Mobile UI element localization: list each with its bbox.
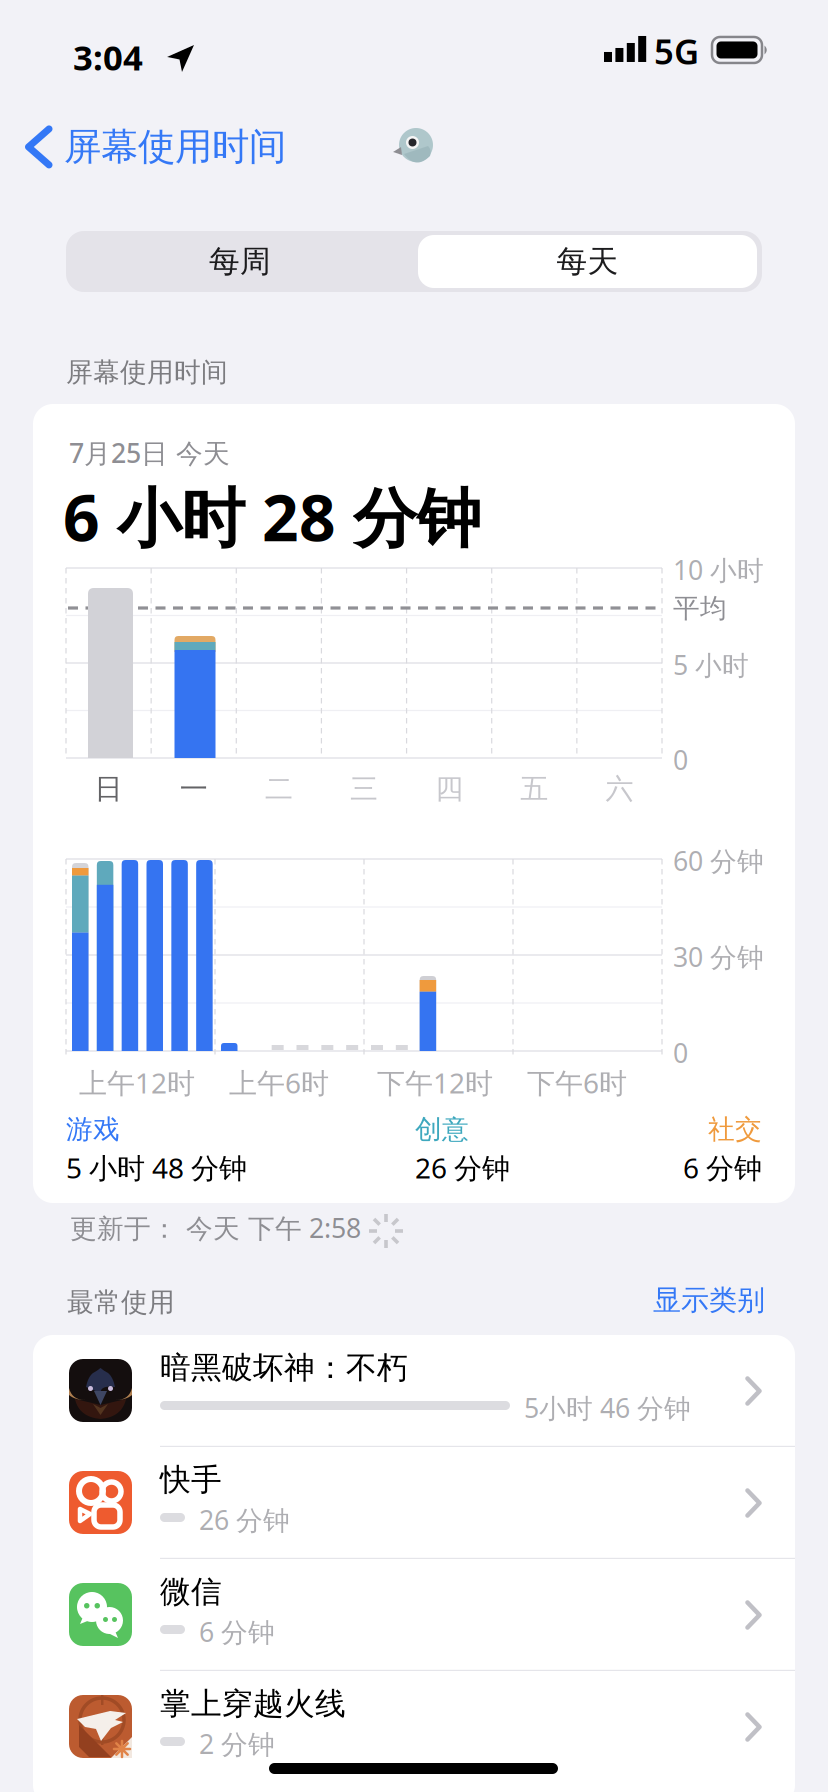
staticText: 社交	[708, 1113, 762, 1146]
staticText: 60 分钟	[673, 843, 764, 878]
staticText: 6 分钟	[199, 1614, 275, 1649]
staticText: 日	[95, 772, 123, 806]
staticText: 暗黑破坏神：不朽	[160, 1349, 408, 1387]
button[interactable]: 快手	[33, 1447, 795, 1559]
staticText: 二	[265, 772, 293, 806]
staticText: 显示类别	[653, 1283, 765, 1317]
button[interactable]: 掌上穿越火线	[33, 1671, 795, 1783]
staticText: 每天	[556, 243, 618, 280]
staticText: 平均	[673, 592, 727, 625]
staticText: 屏幕使用时间	[64, 124, 286, 170]
staticText: 快手	[160, 1461, 222, 1499]
staticText: 更新于： 今天 下午 2:58	[70, 1210, 361, 1245]
staticText: 5 小时 48 分钟	[66, 1149, 247, 1186]
staticText: 3:04	[73, 34, 143, 80]
button[interactable]: 微信	[33, 1559, 795, 1671]
staticText: 6 分钟	[683, 1149, 762, 1186]
staticText: 5G	[654, 28, 699, 74]
staticText: 下午6时	[527, 1064, 627, 1101]
staticText: 六	[605, 772, 633, 806]
staticText: 上午12时	[79, 1064, 195, 1101]
staticText: 游戏	[66, 1113, 120, 1146]
staticText: 屏幕使用时间	[66, 356, 228, 389]
staticText: 0	[673, 1035, 688, 1070]
staticText: 上午6时	[229, 1064, 329, 1101]
button[interactable]: 每周	[66, 231, 414, 292]
staticText: 2 分钟	[199, 1726, 275, 1761]
staticText: 下午12时	[377, 1064, 493, 1101]
staticText: 四	[435, 772, 463, 806]
staticText: 创意	[415, 1113, 469, 1146]
staticText: 每周	[209, 243, 271, 280]
staticText: 5 小时	[673, 647, 749, 682]
staticText: 最常使用	[67, 1286, 175, 1319]
button[interactable]: 每天	[418, 235, 757, 288]
staticText: 0	[673, 742, 688, 777]
staticText: 30 分钟	[673, 939, 764, 974]
staticText: 一	[180, 772, 208, 806]
staticText: 五	[520, 772, 548, 806]
button[interactable]: 暗黑破坏神：不朽	[33, 1335, 795, 1447]
staticText: 掌上穿越火线	[160, 1685, 346, 1723]
staticText: 26 分钟	[415, 1149, 510, 1186]
staticText: 5小时 46 分钟	[524, 1390, 691, 1425]
button[interactable]: 返回	[24, 124, 286, 170]
staticText: 7月25日 今天	[69, 435, 230, 470]
staticText: 6 小时 28 分钟	[63, 474, 481, 559]
button[interactable]: 显示类别	[653, 1283, 765, 1317]
staticText: 26 分钟	[199, 1502, 290, 1537]
staticText: 微信	[160, 1573, 222, 1611]
staticText: 10 小时	[673, 552, 764, 587]
staticText: 三	[350, 772, 378, 806]
